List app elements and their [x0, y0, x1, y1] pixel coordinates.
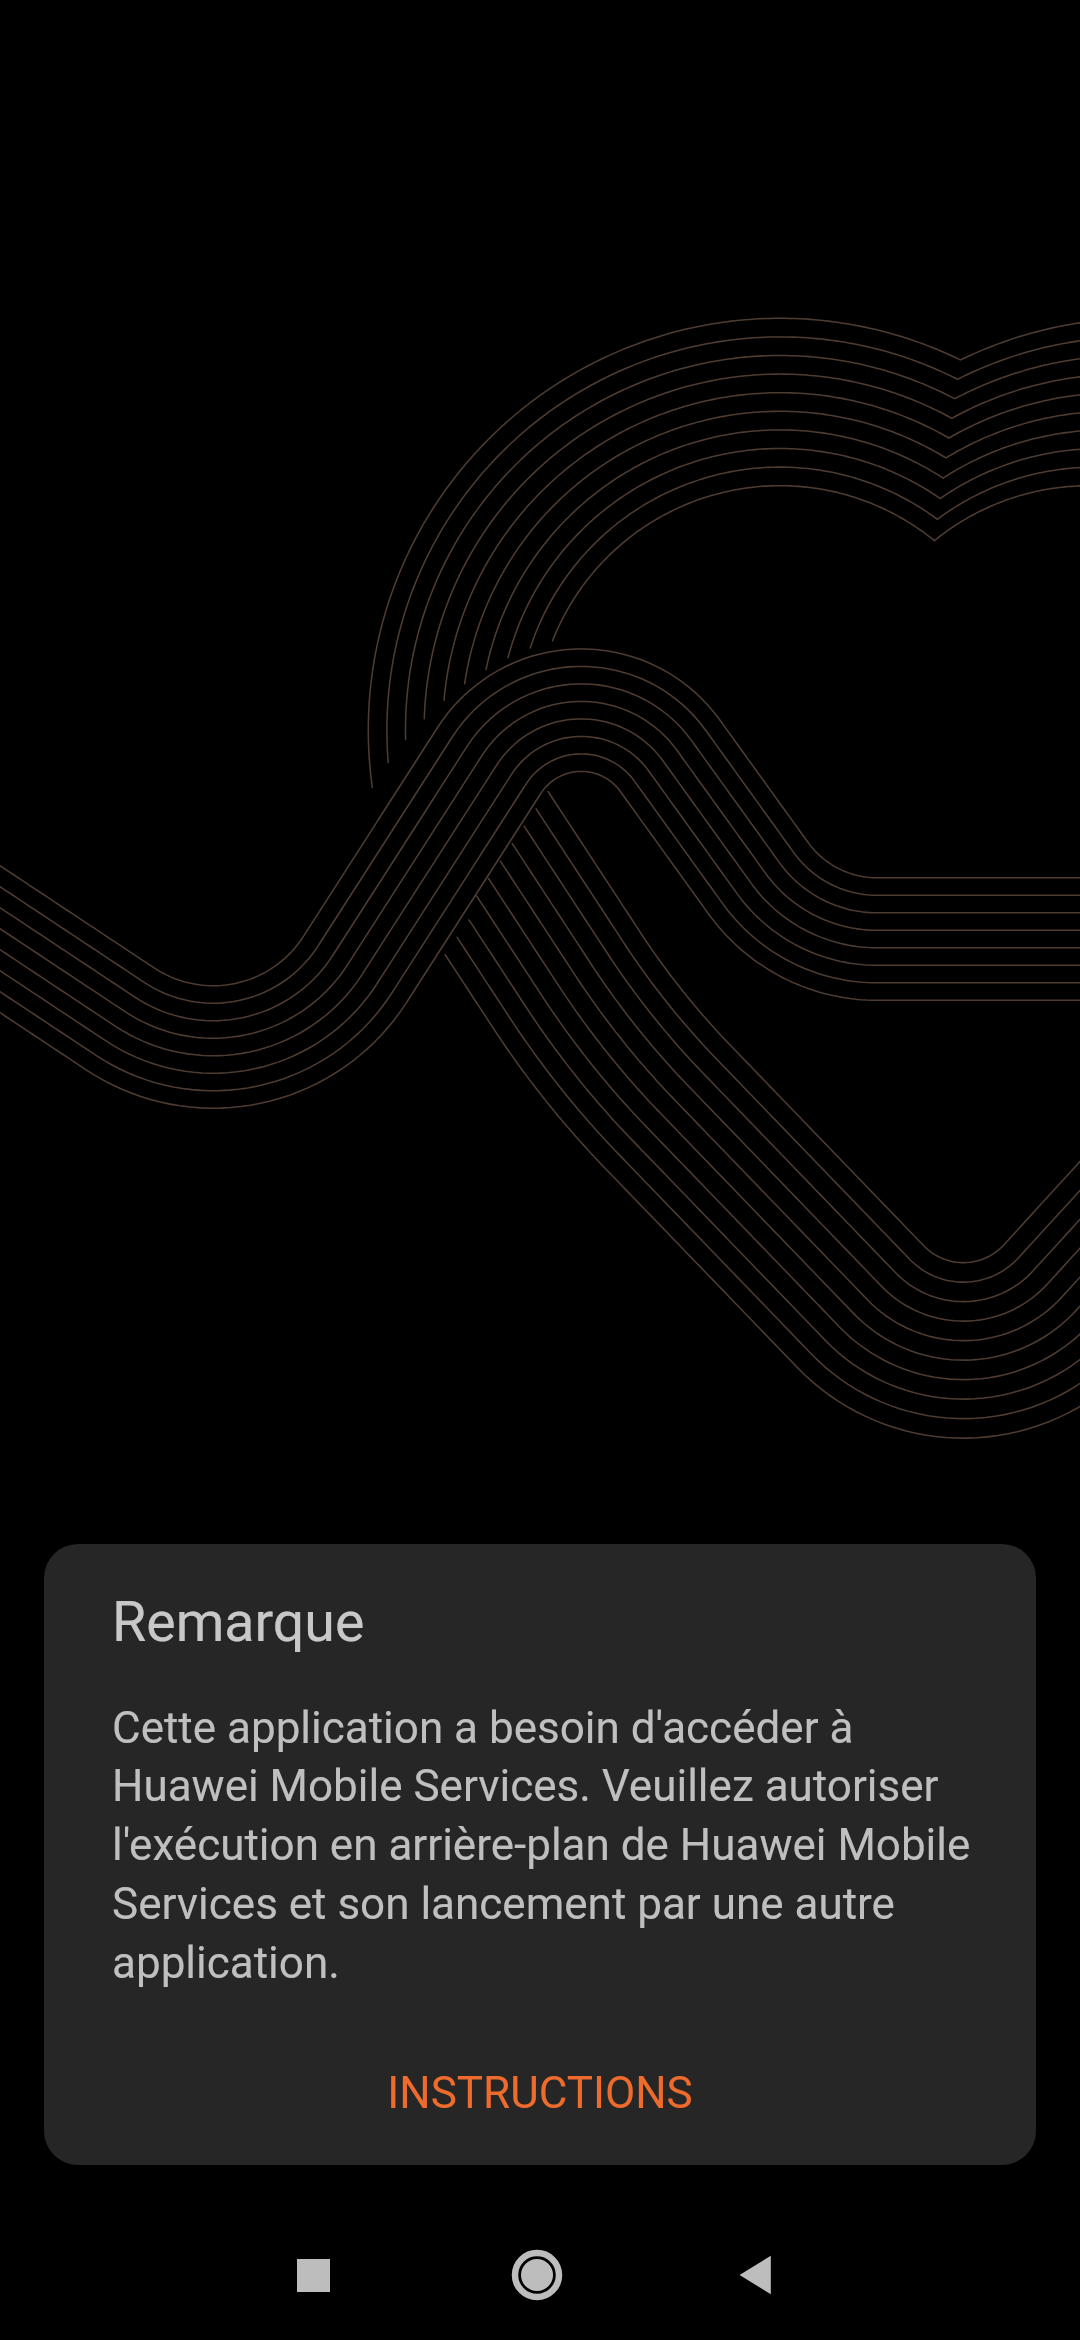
- button[interactable]: Back: [698, 2215, 818, 2335]
- button[interactable]: Recent apps: [253, 2215, 373, 2335]
- staticText: INSTRUCTIONS: [387, 2067, 693, 2119]
- button[interactable]: Home: [477, 2215, 597, 2335]
- button[interactable]: INSTRUCTIONS: [44, 2020, 1036, 2165]
- staticText: Remarque: [112, 1590, 365, 1655]
- staticText: Cette application a besoin d'accéder à H…: [112, 1702, 971, 1989]
